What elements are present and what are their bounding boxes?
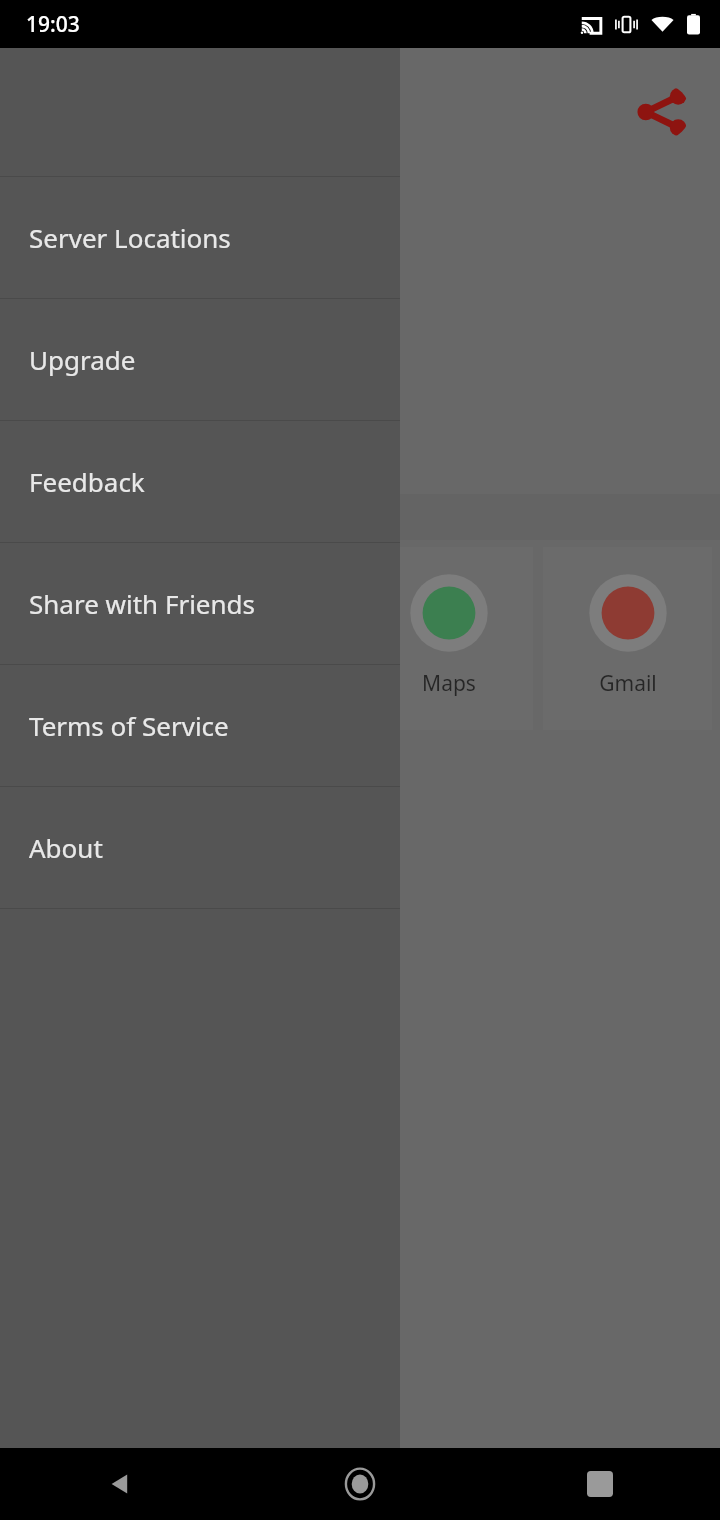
button[interactable]: Home	[240, 1448, 480, 1520]
button[interactable]: Share	[634, 84, 690, 140]
button[interactable]: Upgrade	[0, 299, 400, 420]
button[interactable]: YouTube	[186, 547, 354, 730]
staticText: Gmail	[599, 669, 657, 698]
staticText: Upgrade	[29, 342, 136, 377]
button[interactable]: Recent apps	[480, 1448, 720, 1520]
button[interactable]: Feedback	[0, 421, 400, 542]
staticText: Maps	[422, 669, 476, 698]
button[interactable]: Maps	[364, 547, 533, 730]
button[interactable]: Gmail	[543, 547, 712, 730]
staticText: Terms of Service	[29, 708, 229, 743]
button[interactable]: Server Locations	[0, 177, 400, 298]
button[interactable]: About	[0, 787, 400, 908]
button[interactable]: Chrome	[8, 547, 176, 730]
staticText: About	[29, 830, 103, 865]
button[interactable]: Terms of Service	[0, 665, 400, 786]
staticText: 19:03	[26, 10, 80, 39]
button[interactable]: Share with Friends	[0, 543, 400, 664]
staticText: Server Locations	[29, 220, 231, 255]
staticText: Feedback	[29, 464, 145, 499]
button[interactable]: Connect	[224, 208, 371, 355]
staticText: Share with Friends	[29, 586, 256, 621]
button[interactable]: Back	[0, 1448, 240, 1520]
